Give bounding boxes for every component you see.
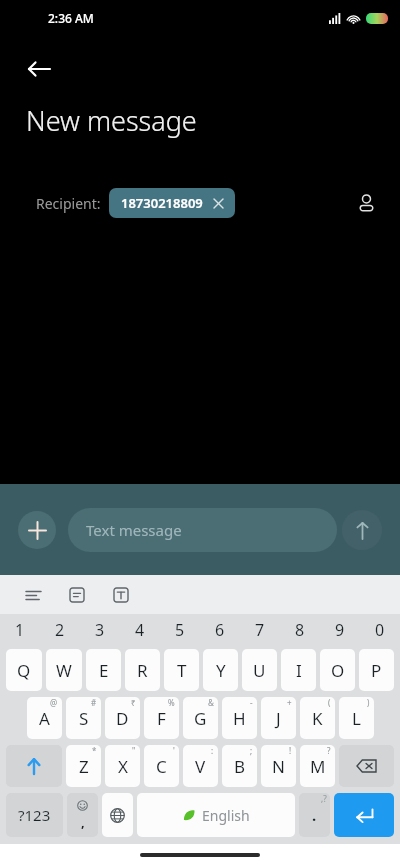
- button[interactable]: Menu: [18, 580, 48, 610]
- staticText: &: [208, 697, 214, 708]
- staticText: H: [233, 707, 246, 730]
- button[interactable]: J: [261, 697, 296, 739]
- staticText: G: [194, 707, 207, 730]
- button[interactable]: M: [300, 745, 335, 787]
- staticText: B: [234, 755, 246, 778]
- staticText: ?: [327, 745, 331, 756]
- button[interactable]: F: [144, 697, 179, 739]
- button[interactable]: .: [299, 793, 330, 837]
- button[interactable]: E: [86, 649, 121, 691]
- button[interactable]: Text formatting: [106, 580, 136, 610]
- button[interactable]: 9: [320, 614, 360, 646]
- staticText: V: [195, 755, 206, 778]
- staticText: @: [50, 697, 58, 708]
- staticText: .: [312, 805, 317, 825]
- button[interactable]: A: [27, 697, 62, 739]
- staticText: #: [91, 697, 97, 708]
- staticText: ₹: [131, 697, 136, 708]
- staticText: ,?: [321, 793, 327, 804]
- button[interactable]: 7: [240, 614, 280, 646]
- staticText: 2: [55, 619, 65, 641]
- button[interactable]: B: [222, 745, 257, 787]
- staticText: 9: [335, 619, 345, 641]
- button[interactable]: T: [164, 649, 199, 691]
- button[interactable]: Back: [20, 50, 58, 88]
- staticText: +: [287, 697, 292, 708]
- staticText: 5: [175, 619, 185, 641]
- staticText: 3: [95, 619, 105, 641]
- button[interactable]: X: [105, 745, 140, 787]
- button[interactable]: S: [66, 697, 101, 739]
- button[interactable]: D: [105, 697, 140, 739]
- staticText: English: [202, 806, 250, 825]
- button[interactable]: Text message: [68, 508, 337, 552]
- staticText: !: [289, 745, 292, 756]
- staticText: 18730218809: [121, 194, 203, 212]
- staticText: C: [156, 755, 167, 778]
- button[interactable]: Add attachment: [18, 511, 56, 549]
- button[interactable]: English: [137, 793, 295, 837]
- staticText: :: [211, 745, 214, 756]
- button[interactable]: N: [261, 745, 296, 787]
- staticText: ,: [81, 813, 85, 831]
- button[interactable]: I: [281, 649, 316, 691]
- button[interactable]: K: [300, 697, 335, 739]
- staticText: S: [79, 707, 89, 730]
- button[interactable]: L: [339, 697, 374, 739]
- button[interactable]: ?123: [6, 793, 63, 837]
- staticText: I: [296, 659, 302, 682]
- button[interactable]: Choose contact: [346, 183, 386, 223]
- staticText: 1: [15, 619, 25, 641]
- button[interactable]: Emoji: [67, 793, 98, 837]
- button[interactable]: 4: [120, 614, 160, 646]
- button[interactable]: Backspace: [339, 745, 394, 787]
- button[interactable]: 18730218809: [109, 188, 235, 218]
- staticText: M: [310, 755, 326, 778]
- button[interactable]: 2: [40, 614, 80, 646]
- staticText: K: [312, 707, 323, 730]
- staticText: %: [168, 697, 175, 708]
- staticText: New message: [26, 102, 197, 139]
- button[interactable]: P: [359, 649, 394, 691]
- staticText: U: [253, 659, 266, 682]
- staticText: Q: [17, 659, 31, 682]
- button[interactable]: 5: [160, 614, 200, 646]
- staticText: W: [56, 659, 72, 682]
- button[interactable]: Q: [6, 649, 42, 691]
- staticText: 8: [295, 619, 305, 641]
- staticText: A: [39, 707, 50, 730]
- staticText: 2:36 AM: [48, 10, 94, 26]
- button[interactable]: 6: [200, 614, 240, 646]
- staticText: E: [99, 659, 109, 682]
- button[interactable]: Change language: [102, 793, 133, 837]
- staticText: P: [371, 659, 382, 682]
- button[interactable]: Send: [342, 510, 382, 550]
- staticText: J: [276, 707, 281, 730]
- button[interactable]: 8: [280, 614, 320, 646]
- button[interactable]: G: [183, 697, 218, 739]
- button[interactable]: Shift: [6, 745, 62, 787]
- button[interactable]: H: [222, 697, 257, 739]
- staticText: Z: [79, 755, 89, 778]
- button[interactable]: 0: [360, 614, 400, 646]
- button[interactable]: Y: [203, 649, 238, 691]
- staticText: Recipient:: [36, 194, 101, 213]
- button[interactable]: 1: [0, 614, 40, 646]
- button[interactable]: 3: [80, 614, 120, 646]
- button[interactable]: U: [242, 649, 277, 691]
- staticText: T: [177, 659, 187, 682]
- button[interactable]: R: [125, 649, 160, 691]
- button[interactable]: Z: [66, 745, 101, 787]
- button[interactable]: O: [320, 649, 355, 691]
- staticText: 6: [215, 619, 225, 641]
- staticText: R: [137, 659, 148, 682]
- button[interactable]: W: [46, 649, 82, 691]
- staticText: -: [250, 697, 253, 708]
- button[interactable]: C: [144, 745, 179, 787]
- staticText: N: [272, 755, 285, 778]
- button[interactable]: V: [183, 745, 218, 787]
- button[interactable]: Clipboard: [62, 580, 92, 610]
- staticText: ): [367, 697, 370, 708]
- button[interactable]: Enter: [334, 793, 394, 837]
- staticText: D: [116, 707, 129, 730]
